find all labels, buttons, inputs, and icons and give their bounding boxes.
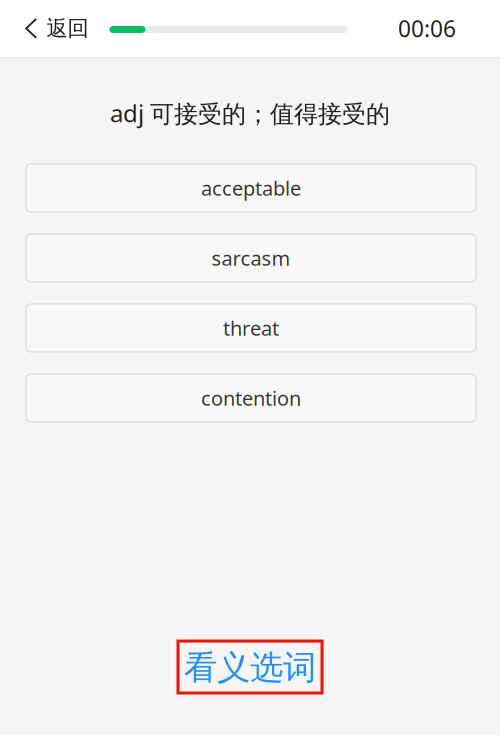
staticText: contention bbox=[201, 385, 301, 411]
staticText: adj 可接受的；值得接受的 bbox=[110, 97, 390, 129]
staticText: 返回 bbox=[46, 15, 88, 42]
staticText: 00:06 bbox=[398, 13, 456, 43]
button[interactable]: 返回 bbox=[0, 0, 109, 57]
staticText: acceptable bbox=[201, 175, 301, 201]
button[interactable]: contention bbox=[26, 374, 476, 422]
button[interactable]: 看义选词 bbox=[178, 641, 322, 693]
button[interactable]: sarcasm bbox=[26, 234, 476, 282]
staticText: 看义选词 bbox=[184, 647, 316, 688]
button[interactable]: threat bbox=[26, 304, 476, 352]
staticText: sarcasm bbox=[211, 245, 290, 271]
button[interactable]: acceptable bbox=[26, 164, 476, 212]
staticText: threat bbox=[223, 315, 279, 341]
